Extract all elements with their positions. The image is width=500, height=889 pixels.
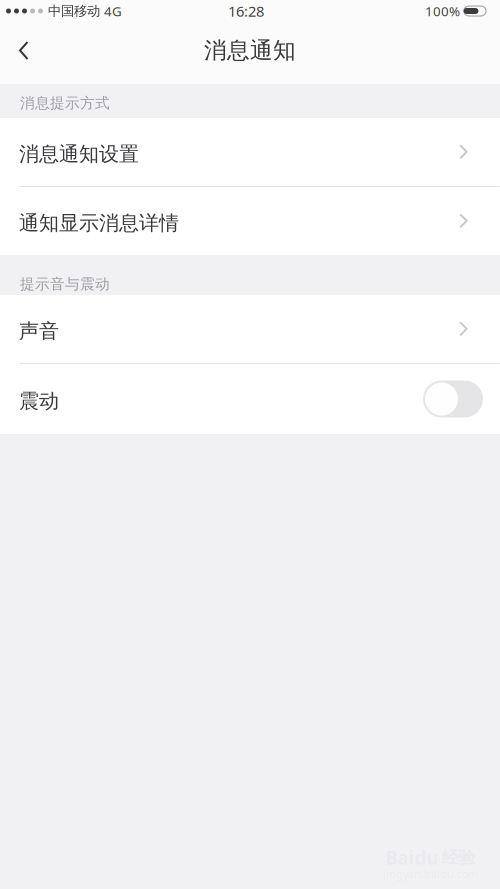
button[interactable]: Back xyxy=(0,22,47,84)
button[interactable]: 通知显示消息详情 xyxy=(0,187,500,255)
staticText: 消息通知 xyxy=(204,37,296,64)
staticText: 声音 xyxy=(19,319,59,343)
staticText: 消息提示方式 xyxy=(20,94,110,112)
staticText: 消息通知设置 xyxy=(19,142,139,166)
button[interactable]: 声音 xyxy=(0,295,500,363)
staticText: 4G xyxy=(104,2,122,20)
button[interactable]: 消息通知设置 xyxy=(0,118,500,186)
staticText: 100% xyxy=(425,2,460,20)
button[interactable]: 震动 xyxy=(0,364,500,434)
staticText: 16:28 xyxy=(228,1,264,21)
staticText: 中国移动 xyxy=(48,3,100,19)
staticText: 提示音与震动 xyxy=(20,275,110,293)
staticText: 通知显示消息详情 xyxy=(19,211,179,235)
staticText: 震动 xyxy=(19,389,59,413)
